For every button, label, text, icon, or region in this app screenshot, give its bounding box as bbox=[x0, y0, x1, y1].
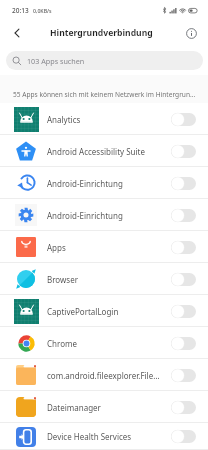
button[interactable]: Chrome bbox=[0, 327, 208, 359]
button[interactable]: Dateimanager bbox=[0, 391, 208, 423]
staticText: Android Accessibility Suite bbox=[47, 146, 168, 157]
staticText: Device Health Services bbox=[47, 431, 168, 442]
staticText: 20:13 bbox=[12, 6, 29, 15]
button[interactable]: Apps bbox=[0, 231, 208, 263]
button[interactable]: Toggle bbox=[171, 337, 196, 350]
staticText: Apps bbox=[47, 242, 168, 253]
staticText: 0,0KB/s bbox=[33, 7, 52, 14]
button[interactable]: Device Health Services bbox=[0, 423, 208, 450]
staticText: 103 Apps suchen bbox=[27, 56, 85, 66]
button[interactable]: Toggle bbox=[171, 177, 196, 190]
staticText: Analytics bbox=[47, 114, 168, 125]
button[interactable]: Toggle bbox=[171, 241, 196, 254]
button[interactable]: Toggle bbox=[171, 305, 196, 318]
button[interactable]: Toggle bbox=[171, 145, 196, 158]
staticText: Hintergrundverbindung bbox=[50, 27, 153, 39]
staticText: CaptivePortalLogin bbox=[47, 306, 168, 317]
button[interactable]: Browser bbox=[0, 263, 208, 295]
button[interactable]: Toggle bbox=[171, 401, 196, 414]
button[interactable]: Android-Einrichtung bbox=[0, 199, 208, 231]
button[interactable]: Android Accessibility Suite bbox=[0, 135, 208, 167]
staticText: com.android.fileexplorer.File… bbox=[47, 370, 168, 381]
button[interactable]: Back bbox=[5, 21, 29, 45]
button[interactable]: Toggle bbox=[171, 430, 196, 443]
staticText: Chrome bbox=[47, 338, 168, 349]
button[interactable]: Toggle bbox=[171, 369, 196, 382]
button[interactable]: Toggle bbox=[171, 209, 196, 222]
staticText: Android-Einrichtung bbox=[47, 178, 168, 189]
staticText: Android-Einrichtung bbox=[47, 210, 168, 221]
button[interactable]: 103 Apps suchen bbox=[6, 51, 203, 70]
button[interactable]: Analytics bbox=[0, 103, 208, 135]
button[interactable]: Toggle bbox=[171, 113, 196, 126]
button[interactable]: Android-Einrichtung bbox=[0, 167, 208, 199]
staticText: Dateimanager bbox=[47, 402, 168, 413]
button[interactable]: com.android.fileexplorer.File… bbox=[0, 359, 208, 391]
button[interactable]: Info bbox=[182, 24, 200, 42]
staticText: 55 Apps können sich mit keinem Netzwerk … bbox=[13, 90, 196, 99]
staticText: Browser bbox=[47, 274, 168, 285]
button[interactable]: CaptivePortalLogin bbox=[0, 295, 208, 327]
button[interactable]: Toggle bbox=[171, 273, 196, 286]
